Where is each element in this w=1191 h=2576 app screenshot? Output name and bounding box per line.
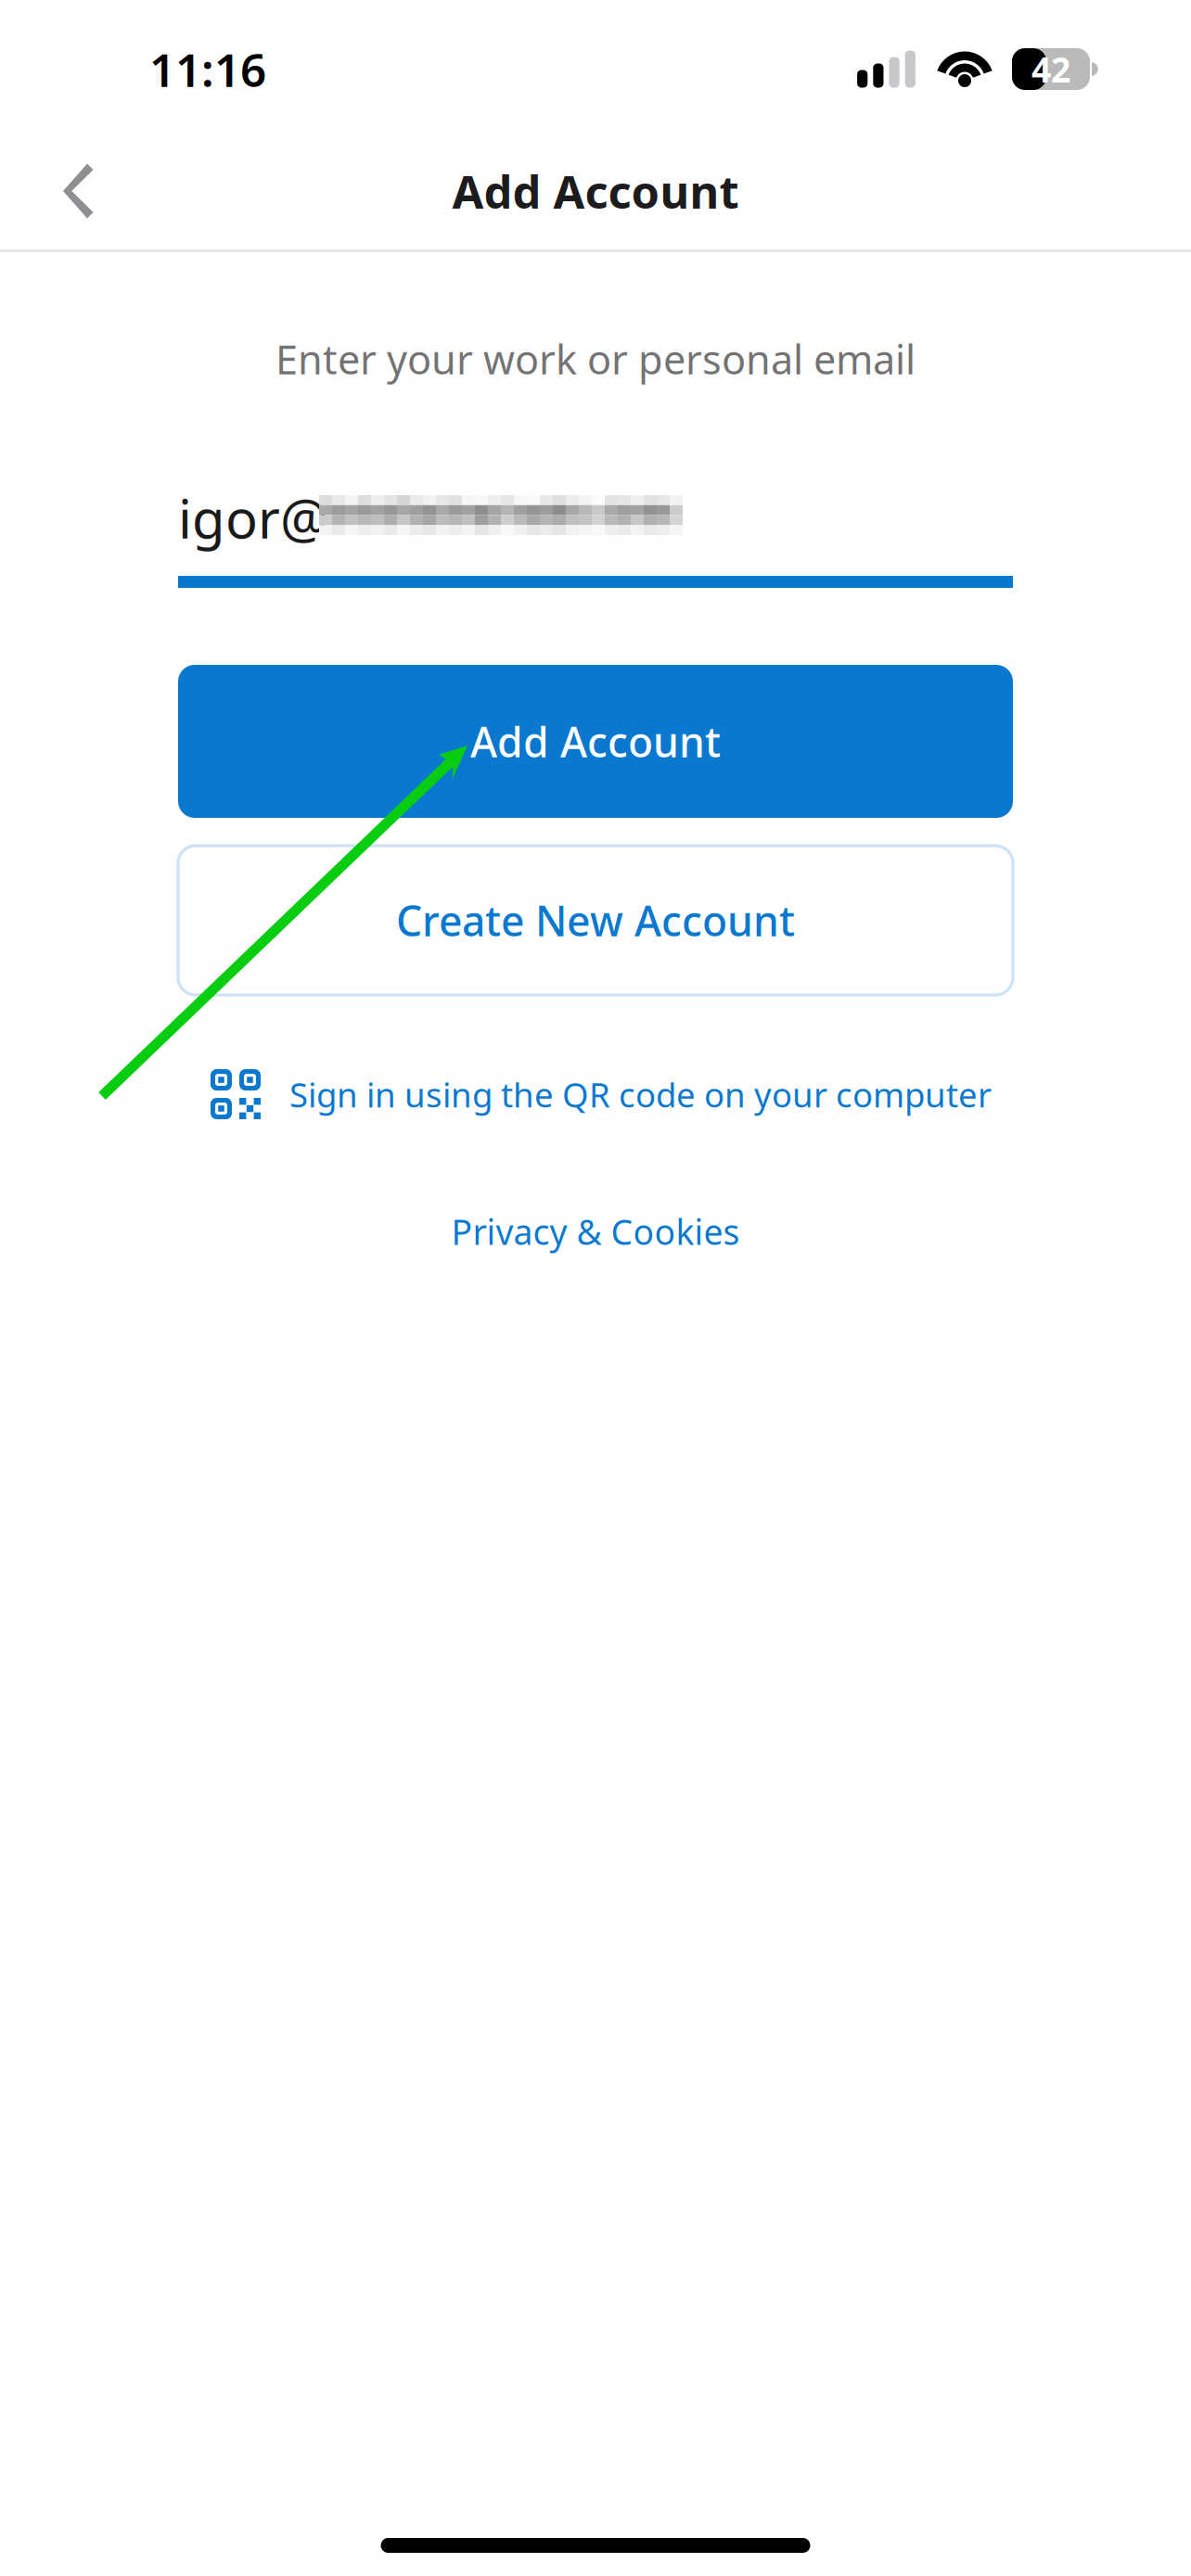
staticText: 42 [1031, 46, 1070, 92]
staticText: Enter your work or personal email [275, 332, 916, 386]
button[interactable]: Create New Account [178, 846, 1013, 995]
staticText: igor@ [178, 481, 328, 554]
staticText: Create New Account [396, 892, 795, 948]
button[interactable]: Add Account [178, 665, 1013, 818]
button[interactable]: Privacy & Cookies [451, 1194, 740, 1269]
staticText: Sign in using the QR code on your comput… [289, 1071, 992, 1117]
staticText: Privacy & Cookies [451, 1208, 740, 1255]
staticText: Add Account [452, 160, 739, 222]
button[interactable]: Back [24, 141, 126, 241]
staticText: 11:16 [149, 38, 266, 100]
staticText: Add Account [470, 713, 721, 769]
button[interactable]: Sign in using the QR code on your comput… [199, 1051, 992, 1138]
